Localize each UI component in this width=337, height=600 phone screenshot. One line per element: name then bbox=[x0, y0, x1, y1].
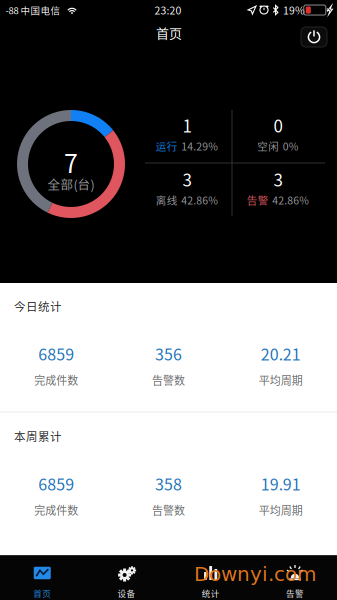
staticText: 运行 bbox=[156, 138, 178, 154]
staticText: 42.86% bbox=[181, 192, 218, 208]
staticText: 358 bbox=[155, 472, 182, 495]
staticText: 离线 bbox=[156, 192, 178, 208]
staticText: 平均周期 bbox=[259, 372, 303, 388]
staticText: 设备 bbox=[117, 587, 135, 599]
staticText: 6859 bbox=[38, 472, 74, 495]
staticText: 7 bbox=[64, 144, 78, 180]
staticText: Downyi.com bbox=[194, 562, 316, 586]
staticText: 3 bbox=[273, 167, 282, 191]
staticText: 完成件数 bbox=[34, 502, 78, 518]
staticText: 空闲 bbox=[257, 138, 279, 154]
button[interactable]: 告警 bbox=[253, 555, 337, 600]
staticText: 0 bbox=[273, 113, 282, 137]
staticText: 356 bbox=[155, 342, 182, 365]
staticText: 告警数 bbox=[152, 372, 185, 388]
staticText: 首页 bbox=[156, 23, 182, 42]
staticText: 23:20 bbox=[154, 2, 181, 18]
staticText: 19% bbox=[283, 2, 305, 18]
staticText: 42.86% bbox=[272, 192, 309, 208]
staticText: 19.91 bbox=[261, 472, 301, 495]
button[interactable]: 统计 bbox=[168, 555, 253, 600]
staticText: 平均周期 bbox=[259, 502, 303, 518]
button[interactable]: 电源 bbox=[301, 27, 327, 47]
button[interactable]: 首页 bbox=[0, 555, 84, 600]
staticText: 全部(台) bbox=[47, 175, 94, 193]
staticText: 0% bbox=[283, 138, 299, 154]
staticText: 告警 bbox=[286, 587, 304, 599]
staticText: 首页 bbox=[33, 587, 51, 599]
staticText: 3 bbox=[182, 167, 191, 191]
button[interactable]: 设备 bbox=[84, 555, 168, 600]
staticText: -88 中国电信 bbox=[5, 3, 60, 17]
staticText: 20.21 bbox=[261, 342, 301, 365]
staticText: 完成件数 bbox=[34, 372, 78, 388]
staticText: 本周累计 bbox=[14, 428, 62, 444]
staticText: 14.29% bbox=[181, 138, 218, 154]
staticText: 今日统计 bbox=[14, 298, 62, 314]
staticText: 统计 bbox=[202, 587, 220, 599]
staticText: 告警数 bbox=[152, 502, 185, 518]
staticText: 1 bbox=[182, 113, 191, 137]
staticText: 告警 bbox=[247, 192, 269, 208]
staticText: 6859 bbox=[38, 342, 74, 365]
